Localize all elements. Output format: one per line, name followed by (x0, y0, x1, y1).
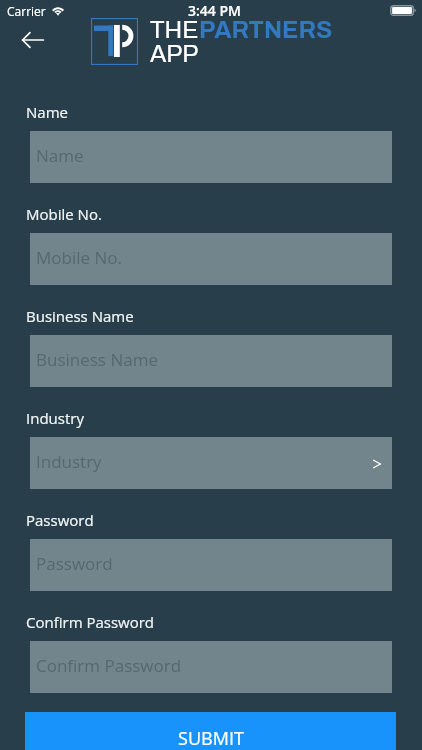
staticText: Confirm Password (36, 654, 182, 677)
button[interactable]: SUBMIT (25, 712, 396, 750)
staticText: Password (26, 510, 94, 530)
staticText: Industry (36, 450, 102, 473)
staticText: Name (26, 102, 68, 122)
staticText: Business Name (26, 306, 134, 326)
staticText: Confirm Password (26, 612, 155, 632)
staticText: Business Name (36, 348, 158, 371)
staticText: PARTNERS (199, 17, 333, 43)
staticText: SUBMIT (178, 726, 244, 750)
staticText: Mobile No. (36, 246, 122, 269)
button[interactable]: Back (12, 19, 54, 61)
button[interactable]: Industry (30, 437, 392, 489)
staticText: Password (36, 552, 113, 575)
staticText: APP (150, 41, 199, 67)
staticText: Name (36, 144, 84, 167)
staticText: Carrier (7, 3, 46, 19)
button[interactable]: Password (30, 539, 392, 591)
button[interactable]: Confirm Password (30, 641, 392, 693)
staticText: Mobile No. (26, 204, 102, 224)
button[interactable]: Mobile No. (30, 233, 392, 285)
staticText: Industry (26, 408, 84, 428)
staticText: THE (150, 17, 199, 43)
staticText: 3:44 PM (188, 1, 241, 20)
button[interactable]: Business Name (30, 335, 392, 387)
